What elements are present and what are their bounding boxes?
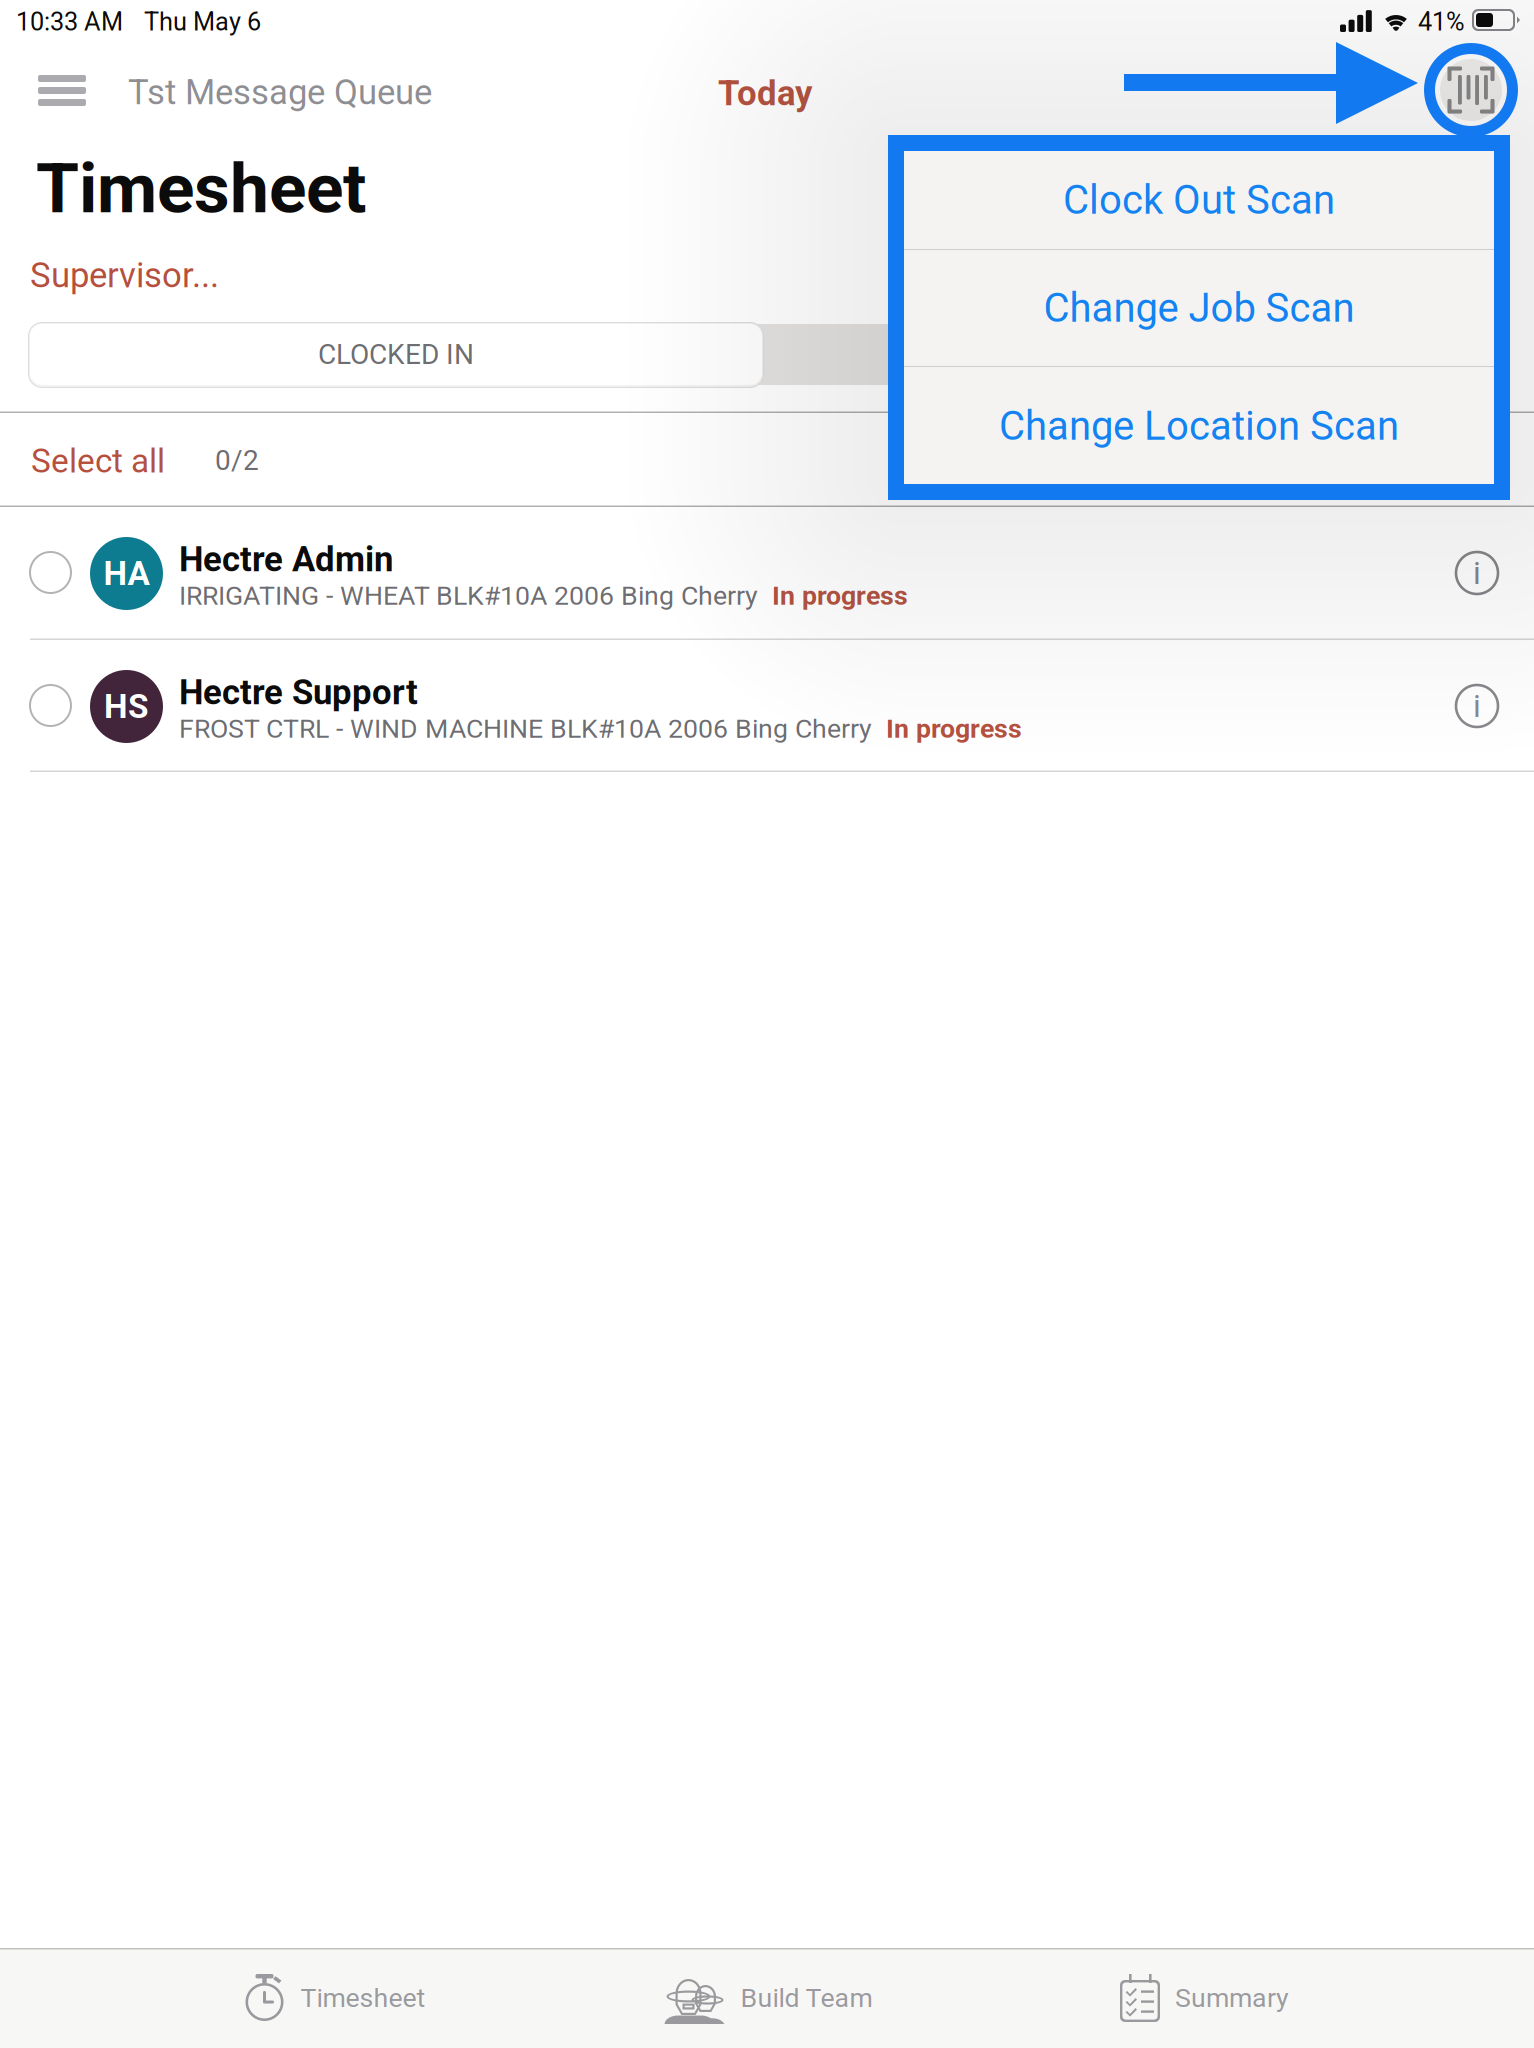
staticText: Change Location Scan — [999, 403, 1399, 449]
staticText: HA — [103, 554, 149, 593]
button[interactable]: HA — [0, 507, 1534, 638]
button[interactable]: Change Job Scan — [904, 250, 1494, 366]
staticText: Summary — [1175, 1982, 1289, 2014]
staticText: 0/2 — [215, 444, 259, 477]
staticText: Clock Out Scan — [1063, 177, 1335, 223]
staticText: i — [1473, 687, 1481, 725]
button[interactable]: Timesheet — [116, 1948, 551, 2048]
staticText: Select all — [31, 441, 165, 481]
staticText: HS — [104, 687, 149, 726]
button[interactable]: Change Location Scan — [904, 367, 1494, 485]
button[interactable]: Summary — [986, 1948, 1421, 2048]
staticText: Change Job Scan — [1043, 285, 1354, 331]
button[interactable]: Build Team — [551, 1948, 986, 2048]
staticText: Timesheet — [36, 148, 366, 229]
staticText: Build Team — [740, 1982, 872, 2014]
button[interactable]: Menu — [22, 58, 102, 120]
staticText: 10:33 AM — [16, 7, 123, 37]
staticText: Tst Message Queue — [128, 72, 432, 113]
staticText: FROST CTRL - WIND MACHINE BLK#10A 2006 B… — [179, 713, 872, 744]
button[interactable]: Select all — [31, 430, 181, 492]
staticText: In progress — [758, 580, 908, 611]
staticText: Hectre Admin — [179, 539, 393, 580]
staticText: i — [1473, 554, 1481, 592]
staticText: IRRIGATING - WHEAT BLK#10A 2006 Bing Che… — [179, 580, 758, 611]
staticText: 41% — [1418, 7, 1465, 37]
staticText: CLOCKED IN — [318, 338, 474, 371]
staticText: Supervisor... — [30, 255, 219, 296]
staticText: In progress — [872, 713, 1022, 744]
staticText: Timesheet — [300, 1982, 425, 2014]
button[interactable]: CLOCKED IN — [30, 324, 762, 385]
staticText: Today — [718, 73, 812, 114]
button[interactable]: HS — [0, 640, 1534, 771]
staticText: Thu May 6 — [144, 7, 261, 37]
button[interactable]: Clock Out Scan — [904, 151, 1494, 249]
staticText: Hectre Support — [179, 672, 418, 713]
button[interactable]: Scan barcode — [1440, 59, 1502, 121]
